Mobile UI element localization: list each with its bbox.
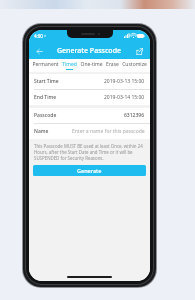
- button[interactable]: Passcode: [34, 108, 145, 123]
- button[interactable]: Permanent: [32, 61, 59, 70]
- staticText: Generate Passcode: [57, 46, 122, 56]
- staticText: Generate: [77, 167, 102, 174]
- staticText: Enter a name for this passcode: [72, 128, 145, 135]
- staticText: End Time: [34, 94, 57, 101]
- staticText: 2019-03-13 15:00: [104, 78, 145, 85]
- staticText: Start Time: [34, 78, 59, 85]
- staticText: Erase: [106, 61, 119, 68]
- staticText: This Passcode MUST BE used at least Once…: [34, 143, 145, 161]
- button[interactable]: Name: [34, 124, 145, 139]
- button[interactable]: End Time: [34, 90, 145, 105]
- staticText: Permanent: [32, 61, 59, 68]
- staticText: Name: [34, 128, 49, 135]
- staticText: 6312396: [124, 112, 145, 119]
- button[interactable]: One-time: [80, 61, 103, 70]
- staticText: One-time: [80, 61, 103, 68]
- staticText: Timed: [62, 61, 77, 68]
- staticText: 2019-03-14 15:00: [104, 94, 145, 101]
- button[interactable]: Start Time: [34, 74, 145, 89]
- button[interactable]: Generate: [33, 165, 146, 176]
- button[interactable]: Share: [133, 45, 146, 58]
- staticText: 4:00: [34, 33, 43, 39]
- button[interactable]: Timed: [62, 61, 77, 70]
- staticText: Passcode: [34, 112, 57, 119]
- button[interactable]: Erase: [106, 61, 119, 70]
- staticText: Customize: [122, 61, 147, 68]
- button[interactable]: Back: [33, 45, 46, 58]
- button[interactable]: Customize: [122, 61, 147, 70]
